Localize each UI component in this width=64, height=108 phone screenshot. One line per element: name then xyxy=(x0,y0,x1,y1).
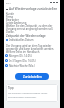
staticText: 9:41 xyxy=(6,1,11,4)
staticText: In 3 Tagen (Do. 16.05.) xyxy=(9,59,37,63)
staticText: Vorgang erneut angezeigt werden soll. xyxy=(6,27,54,31)
staticText: Kunde xyxy=(6,12,14,16)
button[interactable]: Morgen (Di. 14.05.) xyxy=(5,53,57,58)
staticText: angezeigt und kann bearbeitet werden. xyxy=(6,47,55,51)
staticText: Tipp xyxy=(8,86,14,90)
button[interactable]: Zurückstellen xyxy=(15,73,49,80)
button[interactable]: Nächste Woche (Mo.) xyxy=(5,63,57,68)
staticText: Zeitpunkt der Wiedervorlage xyxy=(6,34,46,38)
staticText: Firma xyxy=(6,15,13,19)
staticText: Individuelles Datum xyxy=(9,38,34,42)
button[interactable]: Individuelles Datum xyxy=(6,38,34,42)
staticText: Nächste Woche (Mo.) xyxy=(9,64,35,68)
staticText: Auf Wiedervorlage zurückstellen xyxy=(9,7,58,11)
staticText: Wählen Sie den Zeitpunkt, zu dem der xyxy=(6,24,53,28)
staticText: Morgen (Di. 14.05.) xyxy=(9,54,33,58)
staticText: Einstellungen anpassen. xyxy=(8,95,37,98)
staticText: Zurückstellen xyxy=(23,75,42,79)
staticText: Bearbeiter xyxy=(6,18,19,22)
button[interactable]: In 3 Tagen (Do. 16.05.) xyxy=(5,58,57,63)
other: Back xyxy=(5,8,8,11)
staticText: Danke. xyxy=(6,30,15,34)
staticText: Der Vorgang wird an dem Tag wieder xyxy=(6,44,52,48)
staticText: Letzte Änderung xyxy=(6,21,27,25)
button[interactable]: Back xyxy=(4,6,60,12)
staticText: Sie können Wiedervorlagen unter xyxy=(8,91,48,94)
staticText: Weitere Infos im Handbuch. xyxy=(6,50,40,54)
